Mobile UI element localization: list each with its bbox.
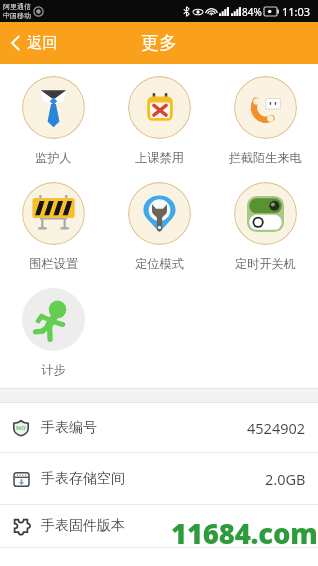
button[interactable]: 监护人 [0, 76, 106, 165]
button[interactable]: 定时开关机 [212, 182, 318, 271]
staticText: 阿里通信 [3, 2, 31, 11]
staticText: 手表存储空间 [41, 470, 125, 488]
staticText: 监护人 [35, 150, 72, 165]
staticText: 定位模式 [135, 256, 184, 271]
button[interactable]: 手表固件版本 [0, 505, 318, 547]
button[interactable]: 计步 [0, 288, 106, 377]
staticText: NO [16, 424, 26, 432]
staticText: 84% [242, 5, 262, 19]
staticText: 11684.com [171, 515, 318, 552]
staticText: 中国移动 [3, 11, 31, 20]
staticText: 定时开关机 [235, 256, 296, 271]
button[interactable]: 返回 [0, 25, 69, 61]
button[interactable]: 上课禁用 [106, 76, 212, 165]
staticText: 手表编号 [41, 419, 97, 437]
staticText: 2.0GB [265, 469, 306, 489]
button[interactable]: 拦截陌生来电 [212, 76, 318, 165]
staticText: 返回 [27, 33, 58, 53]
staticText: 拦截陌生来电 [228, 150, 302, 165]
button[interactable]: 围栏设置 [0, 182, 106, 271]
staticText: 4524902 [247, 418, 306, 438]
staticText: 围栏设置 [29, 256, 78, 271]
staticText: 计步 [41, 362, 66, 377]
button[interactable]: NO [0, 403, 318, 452]
button[interactable]: 手表存储空间 [0, 453, 318, 504]
staticText: 手表固件版本 [41, 517, 125, 535]
staticText: 更多 [141, 32, 177, 55]
staticText: 11:03 [282, 4, 311, 19]
button[interactable]: 定位模式 [106, 182, 212, 271]
staticText: 上课禁用 [135, 150, 184, 165]
